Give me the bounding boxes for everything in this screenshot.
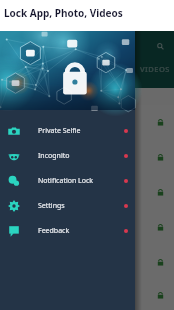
button[interactable] <box>143 280 174 310</box>
staticText: Private Selfie <box>38 126 81 136</box>
button[interactable]: Private Selfie <box>0 118 135 143</box>
button[interactable]: PHOTOS <box>24 61 111 77</box>
staticText: Lock App, Photo, Videos <box>4 6 123 20</box>
button[interactable] <box>108 175 143 210</box>
staticText: Feedback <box>38 226 70 236</box>
button[interactable]: Search <box>154 40 166 52</box>
button[interactable] <box>4 210 38 245</box>
button[interactable]: VIDEOS <box>111 61 174 77</box>
button[interactable] <box>143 140 174 175</box>
button[interactable] <box>73 105 108 140</box>
button[interactable] <box>108 105 143 140</box>
button[interactable] <box>38 175 73 210</box>
button[interactable] <box>143 210 174 245</box>
button[interactable] <box>108 140 143 175</box>
button[interactable] <box>143 245 174 280</box>
staticText: PHOTOS <box>51 64 84 74</box>
button[interactable]: Settings <box>0 193 135 218</box>
button[interactable] <box>4 175 38 210</box>
button[interactable]: Feedback <box>0 218 135 243</box>
button[interactable] <box>108 280 143 310</box>
staticText: Lock App, Photo, Videos <box>4 6 123 20</box>
button[interactable] <box>108 245 143 280</box>
button[interactable] <box>38 105 73 140</box>
staticText: Notification Lock <box>38 176 94 186</box>
staticText: Settings <box>38 201 65 211</box>
staticText: VIDEOS <box>140 64 170 74</box>
button[interactable] <box>73 175 108 210</box>
staticText: Incognito <box>38 151 70 161</box>
button[interactable] <box>143 105 174 140</box>
button[interactable]: Incognito <box>0 143 135 168</box>
button[interactable]: Notification Lock <box>0 168 135 193</box>
button[interactable] <box>143 175 174 210</box>
button[interactable] <box>108 210 143 245</box>
button[interactable] <box>4 140 38 175</box>
button[interactable] <box>38 210 73 245</box>
button[interactable] <box>38 140 73 175</box>
button[interactable] <box>4 105 38 140</box>
